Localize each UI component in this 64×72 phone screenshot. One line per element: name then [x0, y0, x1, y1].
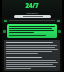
button[interactable] — [7, 24, 57, 38]
button[interactable] — [14, 15, 51, 18]
button[interactable] — [4, 40, 60, 71]
button[interactable]: Expand — [58, 30, 61, 33]
button[interactable]: Online — [3, 30, 6, 33]
staticText: availability — [26, 11, 39, 14]
staticText: 24/7 — [25, 2, 39, 10]
button[interactable]: Status — [4, 20, 7, 22]
button[interactable]: Menu — [57, 20, 60, 22]
